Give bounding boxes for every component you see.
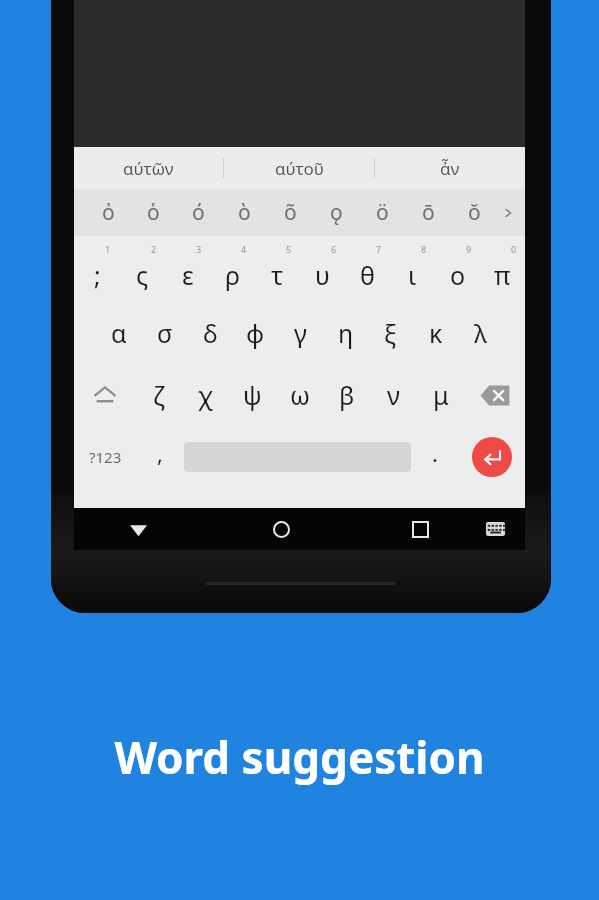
button[interactable]: Recents xyxy=(375,508,465,550)
button[interactable]: ö xyxy=(359,189,405,236)
staticText: 9 xyxy=(466,243,472,255)
button[interactable]: 6 xyxy=(300,240,345,302)
staticText: θ xyxy=(360,258,375,292)
staticText: 7 xyxy=(376,243,382,255)
staticText: ω xyxy=(290,378,310,412)
button[interactable]: 8 xyxy=(390,240,435,302)
staticText: 3 xyxy=(196,243,202,255)
button[interactable]: ω xyxy=(276,364,323,426)
button[interactable]: 0 xyxy=(480,240,525,302)
button[interactable]: 3 xyxy=(165,240,210,302)
button[interactable]: αύτοῦ xyxy=(224,147,374,189)
staticText: τ xyxy=(271,258,284,292)
button[interactable]: 2 xyxy=(120,240,165,302)
button[interactable]: α xyxy=(96,302,142,364)
staticText: ŏ xyxy=(468,198,481,227)
staticText: η xyxy=(338,316,354,350)
staticText: ξ xyxy=(384,316,397,350)
button[interactable]: . xyxy=(411,426,459,488)
staticText: ?123 xyxy=(89,447,122,467)
staticText: β xyxy=(339,378,355,412)
button[interactable]: η xyxy=(323,302,368,364)
staticText: α xyxy=(111,316,127,350)
button[interactable]: Shift xyxy=(74,364,135,426)
staticText: ὸ xyxy=(238,198,251,227)
button[interactable]: ŏ xyxy=(451,189,497,236)
staticText: π xyxy=(494,258,511,292)
button[interactable]: ν xyxy=(370,364,417,426)
button[interactable]: 4 xyxy=(210,240,255,302)
button[interactable]: φ xyxy=(233,302,278,364)
button[interactable]: χ xyxy=(182,364,229,426)
staticText: ö xyxy=(376,198,389,227)
staticText: ζ xyxy=(153,378,165,412)
button[interactable]: μ xyxy=(417,364,464,426)
staticText: ǫ xyxy=(330,198,343,227)
staticText: ἆν xyxy=(440,157,460,180)
button[interactable]: ὸ xyxy=(221,189,267,236)
staticText: ψ xyxy=(243,378,262,412)
button[interactable]: σ xyxy=(142,302,188,364)
button[interactable]: ό xyxy=(176,189,221,236)
button[interactable]: λ xyxy=(458,302,503,364)
staticText: λ xyxy=(474,316,487,350)
staticText: ν xyxy=(387,378,400,412)
button[interactable]: δ xyxy=(188,302,233,364)
button[interactable]: ἆν xyxy=(375,147,525,189)
button[interactable]: ζ xyxy=(135,364,182,426)
staticText: , xyxy=(157,438,163,468)
button[interactable]: 5 xyxy=(255,240,300,302)
button[interactable]: 1 xyxy=(74,240,120,302)
staticText: γ xyxy=(294,316,307,350)
staticText: αύτοῦ xyxy=(275,157,324,180)
staticText: ὀ xyxy=(102,198,115,227)
staticText: σ xyxy=(157,316,173,350)
staticText: ς xyxy=(136,258,149,292)
button[interactable]: ὁ xyxy=(131,189,176,236)
button[interactable]: 7 xyxy=(345,240,390,302)
staticText: μ xyxy=(433,378,449,412)
staticText: 0 xyxy=(511,243,517,255)
button[interactable]: Home xyxy=(188,508,375,550)
button[interactable]: γ xyxy=(278,302,323,364)
button[interactable]: ?123 xyxy=(74,426,136,488)
staticText: 6 xyxy=(331,243,337,255)
staticText: χ xyxy=(198,378,213,412)
staticText: 5 xyxy=(286,243,292,255)
staticText: ό xyxy=(192,198,205,227)
staticText: ὁ xyxy=(147,198,160,227)
staticText: 8 xyxy=(421,243,427,255)
staticText: φ xyxy=(246,316,265,350)
staticText: ρ xyxy=(225,258,241,292)
button[interactable]: αύτῶν xyxy=(74,147,223,189)
button[interactable]: ξ xyxy=(368,302,413,364)
staticText: αύτῶν xyxy=(123,157,174,180)
button[interactable]: Switch keyboard xyxy=(465,508,525,550)
button[interactable]: õ xyxy=(267,189,313,236)
staticText: õ xyxy=(284,198,297,227)
button[interactable]: , xyxy=(136,426,184,488)
button[interactable]: ψ xyxy=(229,364,276,426)
button[interactable]: ὀ xyxy=(86,189,131,236)
staticText: κ xyxy=(429,316,443,350)
staticText: 4 xyxy=(241,243,247,255)
button[interactable]: κ xyxy=(413,302,458,364)
staticText: δ xyxy=(203,316,218,350)
button[interactable]: ō xyxy=(405,189,451,236)
staticText: ε xyxy=(182,258,194,292)
staticText: 2 xyxy=(151,243,157,255)
button[interactable]: More diacritics xyxy=(497,189,519,236)
button[interactable]: β xyxy=(323,364,370,426)
staticText: Word suggestion xyxy=(0,727,599,787)
button[interactable]: 9 xyxy=(435,240,480,302)
staticText: ο xyxy=(450,258,466,292)
button[interactable]: ǫ xyxy=(313,189,359,236)
staticText: ; xyxy=(94,258,101,292)
staticText: ι xyxy=(408,258,417,292)
button[interactable]: Backspace xyxy=(464,364,525,426)
staticText: υ xyxy=(315,258,330,292)
staticText: 1 xyxy=(105,243,111,255)
button[interactable]: Back xyxy=(88,508,188,550)
button[interactable]: Enter xyxy=(472,437,512,477)
